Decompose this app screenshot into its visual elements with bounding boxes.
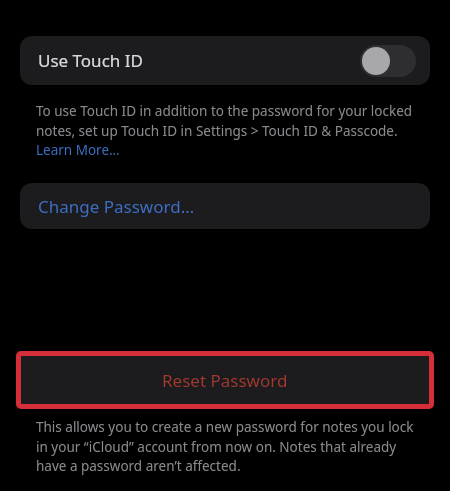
button[interactable]: Use Touch ID toggle <box>360 45 416 77</box>
staticText: Use Touch ID <box>38 49 143 72</box>
button[interactable]: Use Touch ID <box>20 36 430 85</box>
staticText: Change Password… <box>38 195 195 218</box>
staticText: This allows you to create a new password… <box>36 418 414 475</box>
button[interactable]: Reset Password <box>21 356 429 404</box>
staticText: To use Touch ID in addition to the passw… <box>36 102 414 159</box>
button[interactable]: Change Password… <box>20 183 430 229</box>
staticText: Reset Password <box>162 369 288 392</box>
